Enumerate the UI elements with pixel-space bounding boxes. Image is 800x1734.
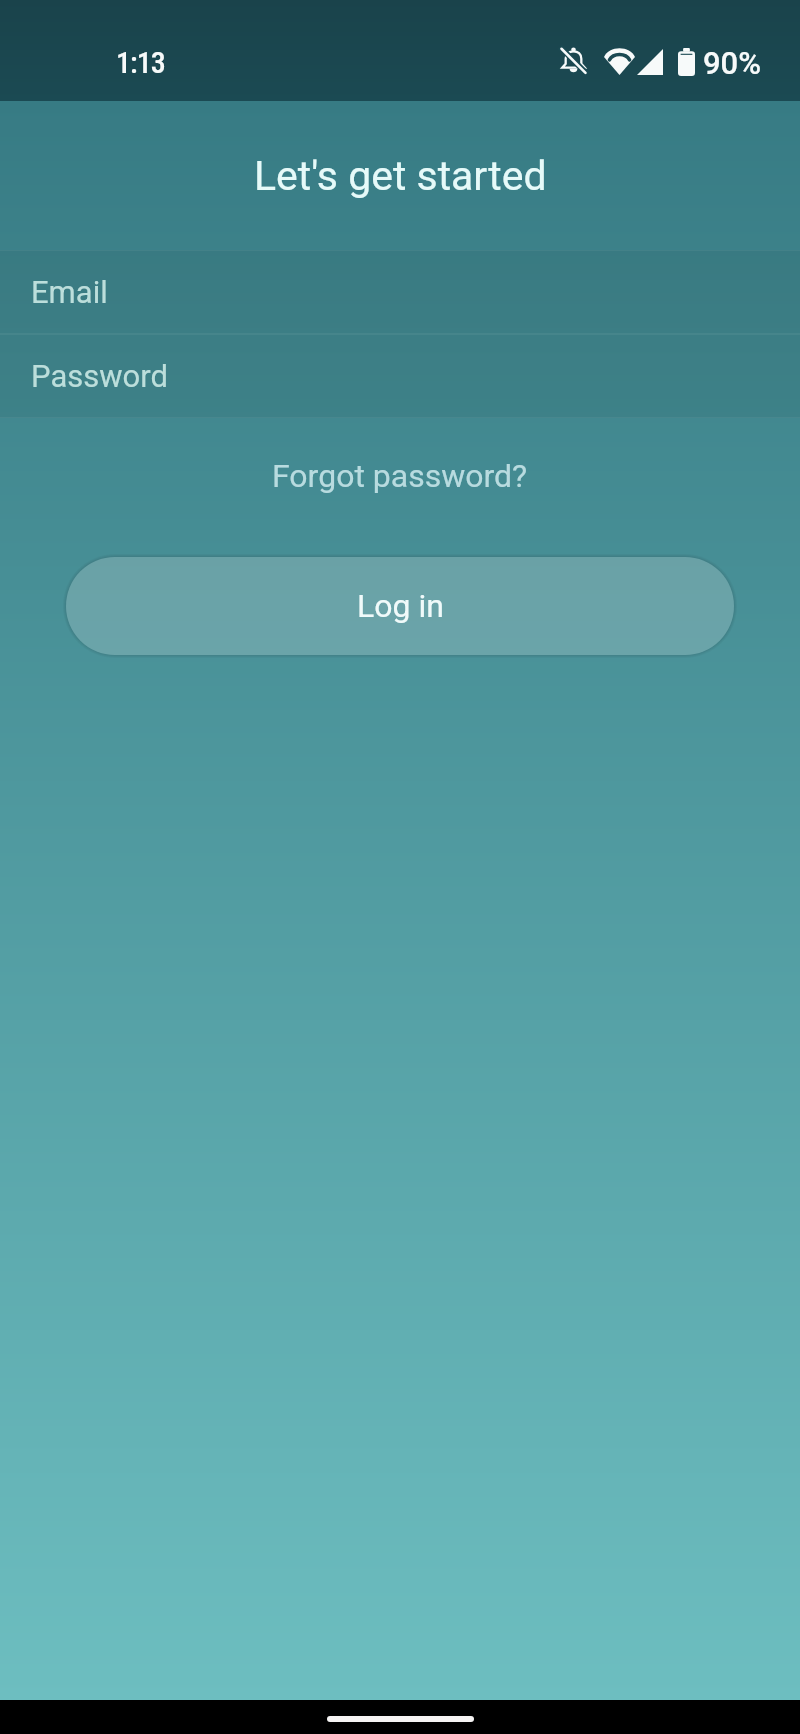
button[interactable]: Log in [66,557,734,655]
other: Notifications silenced [560,47,587,74]
staticText: Let's get started [254,152,547,200]
button[interactable]: Forgot password? [248,440,552,512]
staticText: 1:13 [116,45,165,80]
other: Battery 90 percent [678,48,695,76]
staticText: Log in [357,587,444,625]
staticText: 90% [703,45,762,81]
other: Mobile signal [636,48,664,76]
staticText: Email [31,274,108,310]
button[interactable]: Password [0,334,800,418]
staticText: Password [31,358,168,394]
other: Wi-Fi [604,47,635,75]
staticText: Forgot password? [272,457,528,495]
button[interactable]: Email [0,250,800,334]
